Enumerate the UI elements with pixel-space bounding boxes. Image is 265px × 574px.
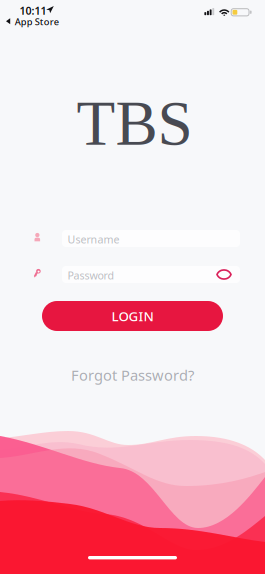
staticText: Username — [67, 232, 119, 246]
staticText: Password — [67, 268, 114, 282]
staticText: 10:11 — [19, 3, 46, 18]
button[interactable]: Forgot Password? — [67, 367, 198, 383]
button[interactable]: LOGIN — [42, 301, 223, 331]
staticText: App Store — [15, 15, 59, 28]
button[interactable]: Username — [62, 230, 240, 247]
staticText: LOGIN — [111, 307, 153, 325]
staticText: Forgot Password? — [71, 365, 194, 385]
button[interactable]: Password — [62, 266, 240, 283]
staticText: TBS — [76, 88, 192, 158]
